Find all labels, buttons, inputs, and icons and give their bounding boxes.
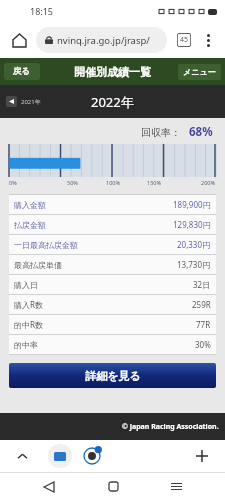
button[interactable]: メニュー	[178, 64, 221, 80]
staticText: 詳細を見る	[85, 369, 141, 383]
button[interactable]: Keyboard	[48, 444, 72, 468]
staticText: 18:15	[30, 5, 54, 17]
staticText: 一日最高払戻金額	[14, 240, 78, 250]
staticText: 購入R数	[14, 299, 43, 310]
staticText: 100%	[106, 179, 121, 186]
staticText: 45	[180, 35, 189, 45]
button[interactable]: 購入R数	[9, 295, 216, 314]
staticText: 回収率：	[141, 126, 181, 139]
staticText: © Japan Racing Association.	[122, 422, 219, 432]
button[interactable]: Tabs	[171, 27, 197, 53]
button[interactable]: Translate	[80, 444, 104, 468]
button[interactable]: 購入金額	[9, 195, 216, 214]
staticText: 2022年	[91, 93, 134, 111]
staticText: 購入金額	[14, 200, 46, 210]
button[interactable]: 詳細を見る	[9, 363, 216, 388]
button[interactable]: 購入日	[9, 275, 216, 294]
button[interactable]: Back	[34, 473, 64, 500]
staticText: 30%	[195, 339, 211, 350]
button[interactable]: 的中R数	[9, 315, 216, 334]
staticText: 77R	[196, 319, 211, 330]
button[interactable]: 一日最高払戻金額	[9, 235, 216, 254]
staticText: 払戻金額	[14, 220, 46, 230]
staticText: 68%	[189, 124, 213, 140]
staticText: 50%	[67, 179, 78, 186]
staticText: 購入日	[14, 280, 38, 290]
button[interactable]: 払戻金額	[9, 215, 216, 234]
staticText: 開催別成績一覧	[74, 65, 151, 79]
button[interactable]: Home	[6, 27, 32, 53]
staticText: 150%	[147, 179, 162, 186]
button[interactable]: 的中率	[9, 335, 216, 354]
button[interactable]: Home	[98, 473, 128, 500]
staticText: nvinq.jra.go.jp/jrasp/JRA	[57, 34, 158, 47]
button[interactable]: 戻る	[4, 63, 40, 80]
staticText: 129,830円	[173, 219, 211, 230]
button[interactable]: nvinq.jra.go.jp/jrasp/JRA	[36, 27, 167, 53]
button[interactable]: Recent apps	[161, 473, 191, 500]
staticText: 的中率	[14, 340, 38, 350]
button[interactable]: 2021年	[6, 96, 41, 107]
staticText: 戻る	[13, 66, 31, 77]
button[interactable]: New tab	[189, 443, 215, 469]
staticText: 0%	[9, 179, 17, 186]
staticText: 2021年	[21, 98, 41, 106]
staticText: 最高払戻単価	[14, 260, 62, 270]
button[interactable]: Expand	[10, 444, 34, 468]
staticText: 20,330円	[177, 239, 211, 250]
staticText: 32日	[193, 279, 211, 290]
staticText: 189,900円	[173, 199, 211, 210]
button[interactable]: More options	[197, 29, 219, 51]
staticText: 的中R数	[14, 319, 43, 330]
staticText: メニュー	[183, 67, 216, 77]
staticText: 200%	[201, 179, 216, 186]
staticText: 259R	[192, 299, 211, 310]
staticText: 13,730円	[177, 259, 211, 270]
button[interactable]: 最高払戻単価	[9, 255, 216, 274]
